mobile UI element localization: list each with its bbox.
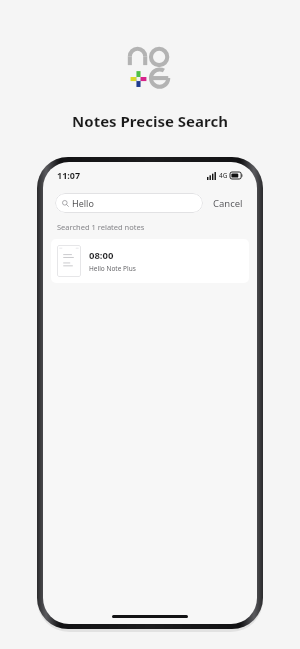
staticText: Hello Note Plus [89, 264, 136, 273]
staticText: Searched 1 related notes [57, 222, 145, 232]
staticText: 11:07 [57, 169, 81, 181]
staticText: 08:00 [89, 249, 114, 262]
staticText: Cancel [213, 197, 243, 210]
staticText: Notes Precise Search [0, 111, 300, 131]
staticText: 4G [219, 171, 228, 180]
button[interactable]: 08:00 [51, 239, 249, 283]
staticText: Hello [72, 197, 94, 209]
other: Status icons [207, 171, 243, 180]
button[interactable]: Hello [55, 193, 203, 213]
button[interactable]: Cancel [211, 195, 245, 212]
